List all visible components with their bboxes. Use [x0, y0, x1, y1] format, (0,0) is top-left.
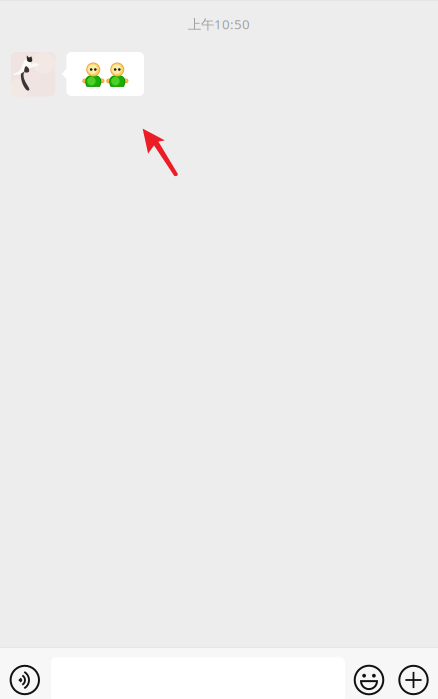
staticText: 上午10:50 — [188, 15, 250, 33]
button[interactable]: Voice message — [3, 658, 47, 699]
button[interactable]: Emoji — [347, 658, 391, 699]
button[interactable]: More — [391, 658, 435, 699]
